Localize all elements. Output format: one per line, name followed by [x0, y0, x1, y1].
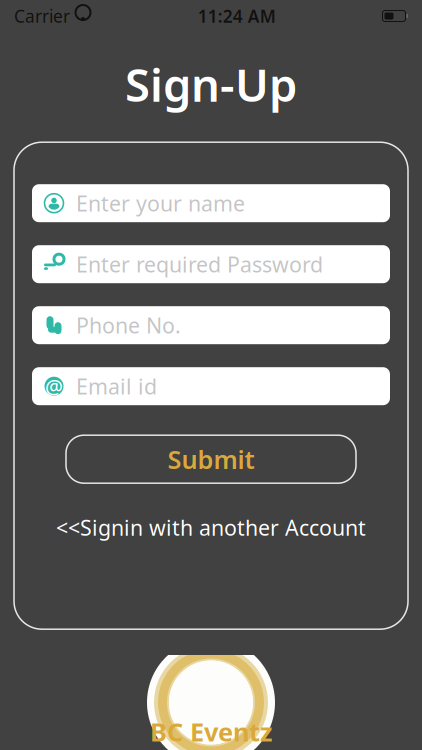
staticText: @: [45, 373, 63, 399]
staticText: Carrier: [14, 4, 70, 27]
button[interactable]: Submit: [66, 435, 356, 483]
staticText: Sign-Up: [125, 54, 297, 114]
staticText: Enter required Password: [76, 250, 323, 278]
button[interactable]: Enter required Password: [32, 245, 390, 283]
button[interactable]: <<Signin with another Account: [44, 509, 378, 545]
button[interactable]: @: [32, 367, 390, 405]
staticText: 11:24 AM: [198, 4, 276, 27]
button[interactable]: Phone No.: [32, 306, 390, 344]
staticText: <<Signin with another Account: [56, 513, 366, 541]
staticText: Enter your name: [76, 189, 245, 217]
staticText: Phone No.: [76, 311, 181, 339]
button[interactable]: Enter your name: [32, 184, 390, 222]
staticText: Email id: [76, 372, 157, 400]
staticText: BC Eventz: [150, 715, 272, 748]
staticText: Submit: [167, 442, 254, 476]
